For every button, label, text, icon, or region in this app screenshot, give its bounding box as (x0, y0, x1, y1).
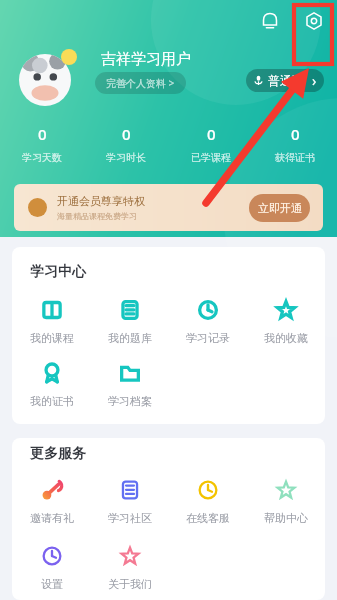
button[interactable]: 邀请有礼 (12, 477, 91, 527)
staticText: 海量精品课程免费学习 (57, 211, 137, 221)
staticText: 学习记录 (186, 331, 230, 345)
button[interactable]: 0 (96, 122, 156, 166)
staticText: 学习中心 (30, 263, 86, 281)
staticText: › (312, 71, 317, 90)
staticText: 在线客服 (186, 511, 230, 525)
button[interactable]: 学习档案 (91, 360, 169, 410)
button[interactable]: Settings (302, 9, 326, 33)
button[interactable]: Profile avatar (19, 54, 71, 106)
staticText: 邀请有礼 (30, 511, 74, 525)
staticText: 获得证书 (275, 151, 315, 164)
button[interactable]: 学习记录 (169, 297, 247, 347)
staticText: 开通会员尊享特权 (57, 194, 145, 208)
staticText: 我的题库 (108, 331, 152, 345)
button[interactable]: 开通会员尊享特权 (14, 184, 323, 231)
staticText: 完善个人资料 > (106, 76, 175, 90)
staticText: 0 (38, 124, 47, 144)
button[interactable]: 完善个人资料 > (95, 72, 186, 94)
staticText: 更多服务 (30, 445, 86, 463)
staticText: 普通话 (268, 73, 304, 88)
staticText: 学习时长 (106, 151, 146, 164)
button[interactable]: 我的课程 (12, 297, 91, 347)
staticText: 0 (291, 124, 300, 144)
button[interactable]: 在线客服 (169, 477, 247, 527)
button[interactable]: 0 (181, 122, 241, 166)
staticText: 学习天数 (22, 151, 62, 164)
staticText: 已学课程 (191, 151, 231, 164)
button[interactable]: 立即开通 (249, 194, 310, 222)
staticText: 设置 (41, 577, 63, 591)
staticText: 我的证书 (30, 394, 74, 408)
staticText: 帮助中心 (264, 511, 308, 525)
button[interactable]: 我的证书 (12, 360, 91, 410)
staticText: 关于我们 (108, 577, 152, 591)
button[interactable]: 设置 (12, 543, 91, 593)
button[interactable]: 0 (12, 122, 72, 166)
button[interactable]: Notifications (258, 9, 282, 33)
staticText: 学习档案 (108, 394, 152, 408)
button[interactable]: 帮助中心 (247, 477, 325, 527)
staticText: 学习社区 (108, 511, 152, 525)
staticText: 立即开通 (258, 201, 302, 215)
button[interactable]: 关于我们 (91, 543, 169, 593)
staticText: 我的课程 (30, 331, 74, 345)
button[interactable]: 普通话 (246, 69, 324, 92)
staticText: 0 (207, 124, 216, 144)
button[interactable]: 0 (265, 122, 325, 166)
staticText: 我的收藏 (264, 331, 308, 345)
button[interactable]: 我的题库 (91, 297, 169, 347)
button[interactable]: 我的收藏 (247, 297, 325, 347)
staticText: 0 (122, 124, 131, 144)
staticText: 吉祥学习用户 (101, 50, 191, 69)
button[interactable]: 学习社区 (91, 477, 169, 527)
